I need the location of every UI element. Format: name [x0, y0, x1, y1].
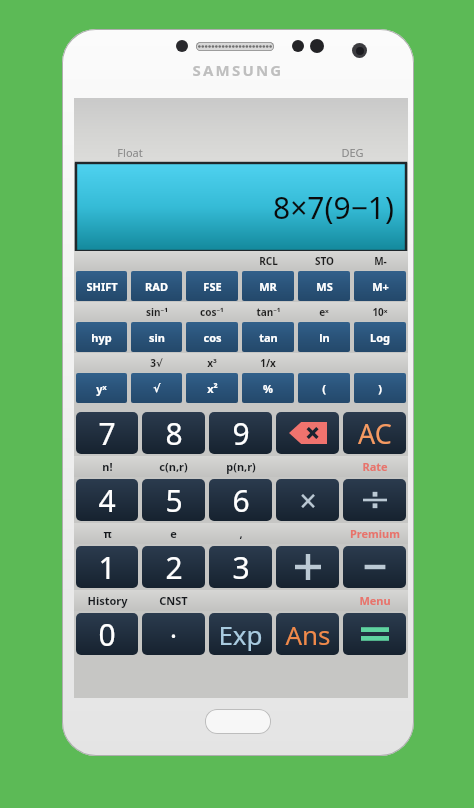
button[interactable]: 3 — [209, 546, 272, 588]
staticText: 4 — [98, 480, 116, 521]
staticText: AC — [358, 415, 392, 452]
button[interactable]: √ — [131, 373, 182, 403]
button[interactable]: Home — [205, 709, 271, 734]
staticText: 7 — [98, 413, 116, 454]
staticText: MR — [259, 279, 277, 294]
staticText: Float — [117, 145, 143, 160]
staticText: sin — [149, 330, 165, 345]
button[interactable]: tan — [242, 322, 294, 352]
staticText: M+ — [372, 279, 389, 294]
staticText: cos⁻¹ — [200, 305, 224, 319]
staticText: FSE — [203, 279, 222, 294]
button[interactable]: · — [142, 613, 205, 655]
staticText: % — [263, 381, 273, 396]
button[interactable]: MS — [298, 271, 350, 301]
staticText: 1 — [98, 547, 116, 588]
button[interactable]: sin — [131, 322, 182, 352]
staticText: ln — [319, 330, 330, 345]
button[interactable]: yˣ — [76, 373, 127, 403]
staticText: SAMSUNG — [62, 60, 414, 80]
staticText: STO — [315, 254, 334, 268]
button[interactable]: 2 — [142, 546, 205, 588]
staticText: p(n,r) — [226, 459, 256, 474]
staticText: tan⁻¹ — [256, 305, 281, 319]
staticText: MS — [316, 279, 333, 294]
staticText: 3 — [232, 547, 250, 588]
staticText: eˣ — [319, 305, 329, 319]
staticText: RCL — [259, 254, 278, 268]
staticText: Ans — [285, 617, 331, 652]
staticText: 0 — [98, 614, 116, 655]
button[interactable]: × — [276, 479, 339, 521]
staticText: √ — [153, 382, 161, 395]
staticText: 8 — [165, 413, 183, 454]
staticText: ) — [378, 381, 382, 396]
staticText: 3√ — [150, 356, 163, 370]
staticText: · — [170, 617, 177, 652]
staticText: yˣ — [96, 381, 107, 396]
staticText: e — [170, 526, 177, 541]
staticText: Rate — [362, 459, 388, 474]
button[interactable]: SHIFT — [76, 271, 127, 301]
staticText: Premium — [350, 526, 400, 541]
staticText: CNST — [159, 593, 188, 608]
button[interactable]: AC — [343, 412, 406, 454]
button[interactable]: M+ — [354, 271, 406, 301]
button[interactable]: Equals — [343, 613, 406, 655]
staticText: M- — [374, 254, 387, 268]
button[interactable]: ln — [298, 322, 350, 352]
staticText: cos — [203, 330, 222, 345]
staticText: sin⁻¹ — [146, 305, 168, 319]
button[interactable]: cos — [186, 322, 238, 352]
button[interactable]: FSE — [186, 271, 238, 301]
staticText: Exp — [218, 617, 263, 652]
button[interactable]: ) — [354, 373, 406, 403]
button[interactable]: % — [242, 373, 294, 403]
staticText: 6 — [232, 480, 250, 521]
staticText: RAD — [145, 279, 168, 294]
button[interactable]: Exp — [209, 613, 272, 655]
staticText: x³ — [207, 356, 217, 370]
staticText: π — [103, 526, 112, 541]
button[interactable]: hyp — [76, 322, 127, 352]
button[interactable]: 0 — [76, 613, 138, 655]
button[interactable]: Backspace — [276, 412, 339, 454]
button[interactable]: RAD — [131, 271, 182, 301]
button[interactable]: Minus — [343, 546, 406, 588]
button[interactable]: Plus — [276, 546, 339, 588]
staticText: n! — [102, 459, 113, 474]
button[interactable]: Divide — [343, 479, 406, 521]
button[interactable]: 5 — [142, 479, 205, 521]
button[interactable]: MR — [242, 271, 294, 301]
staticText: , — [239, 526, 243, 541]
staticText: tan — [259, 330, 278, 345]
button[interactable]: 1 — [76, 546, 138, 588]
button[interactable]: Ans — [276, 613, 339, 655]
staticText: c(n,r) — [159, 459, 188, 474]
staticText: 8×7(9−1) — [273, 187, 394, 228]
staticText: History — [87, 593, 128, 608]
staticText: 2 — [165, 547, 183, 588]
button[interactable]: 8 — [142, 412, 205, 454]
staticText: 5 — [165, 480, 183, 521]
button[interactable]: 6 — [209, 479, 272, 521]
staticText: Menu — [359, 593, 391, 608]
button[interactable]: 4 — [76, 479, 138, 521]
staticText: 1/x — [260, 356, 276, 370]
staticText: ( — [322, 381, 326, 396]
staticText: x² — [207, 381, 218, 396]
button[interactable]: 7 — [76, 412, 138, 454]
staticText: 10ˣ — [372, 305, 388, 319]
button[interactable]: x² — [186, 373, 238, 403]
staticText: hyp — [91, 330, 112, 345]
staticText: SHIFT — [86, 279, 118, 294]
button[interactable]: 9 — [209, 412, 272, 454]
button[interactable]: ( — [298, 373, 350, 403]
staticText: × — [299, 480, 317, 521]
button[interactable]: Log — [354, 322, 406, 352]
staticText: Log — [370, 330, 390, 345]
staticText: DEG — [341, 145, 364, 160]
staticText: 9 — [232, 413, 250, 454]
